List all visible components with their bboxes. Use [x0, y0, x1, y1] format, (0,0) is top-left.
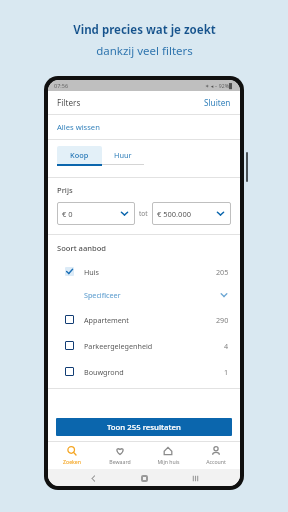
- staticText: Sluiten: [204, 97, 231, 108]
- button[interactable]: € 500.000: [152, 202, 231, 225]
- staticText: € 0: [62, 209, 119, 219]
- button[interactable]: Huis: [57, 261, 231, 282]
- button[interactable]: Back: [87, 472, 99, 484]
- button[interactable]: Mijn huis: [144, 444, 192, 467]
- staticText: dankzij veel filters: [96, 43, 193, 59]
- button[interactable]: Huur: [102, 146, 144, 164]
- button[interactable]: Alles wissen: [48, 115, 240, 139]
- other: Zoeken: [67, 446, 77, 456]
- staticText: 205: [216, 267, 229, 277]
- staticText: Prijs: [57, 185, 73, 195]
- staticText: ✶ ◂ ·· 92%▊: [205, 82, 234, 89]
- staticText: Soort aanbod: [57, 243, 107, 253]
- button[interactable]: Sluiten: [204, 97, 231, 108]
- button[interactable]: Toon 255 resultaten: [56, 418, 232, 436]
- staticText: Account: [206, 458, 226, 465]
- button[interactable]: Bouwgrond: [57, 361, 231, 382]
- staticText: 4: [224, 341, 229, 351]
- button[interactable]: Home: [138, 472, 150, 484]
- staticText: Zoeken: [63, 458, 81, 465]
- staticText: Specificeer: [84, 290, 219, 300]
- button[interactable]: Recents: [189, 472, 201, 484]
- staticText: 290: [216, 315, 229, 325]
- staticText: Huis: [84, 267, 216, 277]
- staticText: Bewaard: [109, 458, 131, 465]
- staticText: € 500.000: [157, 209, 215, 219]
- other: Mijn huis: [163, 446, 173, 456]
- staticText: Toon 255 resultaten: [107, 422, 181, 433]
- staticText: Bouwgrond: [84, 367, 224, 377]
- staticText: Mijn huis: [157, 458, 180, 465]
- other: Bewaard: [115, 446, 125, 456]
- button[interactable]: Koop: [57, 146, 102, 164]
- staticText: Filters: [57, 97, 204, 108]
- staticText: 07:56: [54, 82, 69, 89]
- staticText: Appartement: [84, 315, 216, 325]
- staticText: Vind precies wat je zoekt: [73, 22, 216, 38]
- button[interactable]: Parkeergelegenheid: [57, 335, 231, 356]
- staticText: 1: [224, 367, 229, 377]
- button[interactable]: Account: [192, 444, 240, 467]
- button[interactable]: Specificeer: [57, 286, 231, 304]
- staticText: Parkeergelegenheid: [84, 341, 224, 351]
- other: Account: [211, 446, 221, 456]
- button[interactable]: Bewaard: [96, 444, 144, 467]
- staticText: Huur: [114, 150, 132, 160]
- staticText: tot: [139, 209, 148, 218]
- button[interactable]: Zoeken: [48, 444, 96, 467]
- staticText: Koop: [70, 150, 89, 160]
- button[interactable]: Appartement: [57, 309, 231, 330]
- button[interactable]: € 0: [57, 202, 135, 225]
- staticText: Alles wissen: [57, 122, 100, 132]
